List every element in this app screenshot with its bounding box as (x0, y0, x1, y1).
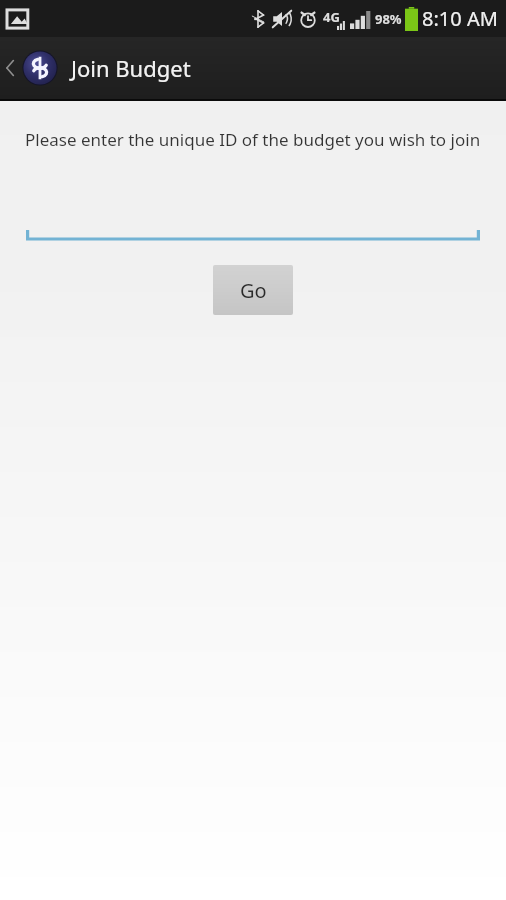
staticText: 4G (323, 8, 340, 26)
button[interactable]: Budget ID input (0, 219, 506, 245)
staticText: 8:10 AM (422, 5, 498, 32)
button[interactable]: Navigate up (0, 47, 191, 89)
staticText: Please enter the unique ID of the budget… (25, 128, 484, 151)
staticText: 98% (375, 10, 402, 28)
button[interactable]: Go (213, 265, 293, 315)
staticText: Go (240, 277, 267, 304)
staticText: Join Budget (71, 53, 191, 83)
